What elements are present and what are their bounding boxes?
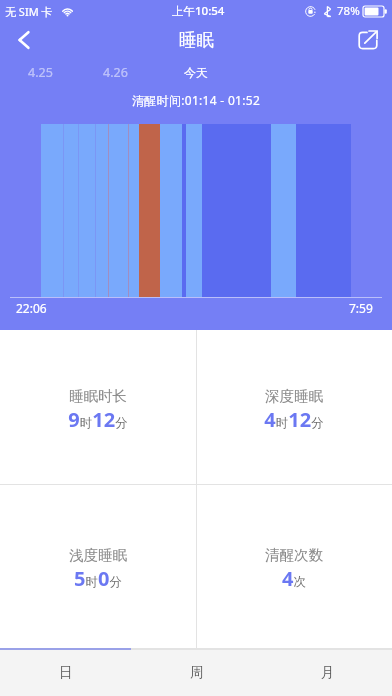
button[interactable]: 月 <box>261 650 392 696</box>
staticText: 深度睡眠 <box>265 387 323 405</box>
staticText: 清醒时间:01:14 - 01:52 <box>132 92 261 108</box>
button[interactable]: 清醒次数 <box>196 485 392 648</box>
staticText: 清醒次数 <box>265 546 323 564</box>
button[interactable]: 睡眠时长 <box>0 330 196 485</box>
staticText: 22:06 <box>16 300 47 316</box>
button[interactable]: 4.26 <box>85 61 145 83</box>
button[interactable]: Share <box>346 22 390 58</box>
staticText: 4时12分 <box>264 406 324 433</box>
staticText: 睡眠时长 <box>69 387 127 405</box>
staticText: 日 <box>59 664 73 681</box>
button[interactable]: 浅度睡眠 <box>0 485 196 648</box>
staticText: 4次 <box>282 565 306 592</box>
staticText: 月 <box>321 664 335 681</box>
button[interactable]: 深度睡眠 <box>196 330 392 485</box>
staticText: 今天 <box>184 65 208 80</box>
staticText: 睡眠 <box>179 29 214 51</box>
staticText: 78% <box>337 3 360 19</box>
staticText: 4.25 <box>28 64 53 81</box>
button[interactable]: 日 <box>0 650 130 696</box>
staticText: 7:59 <box>349 300 373 316</box>
button[interactable]: 4.25 <box>10 61 70 83</box>
staticText: 4.26 <box>103 64 128 81</box>
staticText: 周 <box>190 664 204 681</box>
button[interactable]: 周 <box>130 650 261 696</box>
staticText: 9时12分 <box>68 406 128 433</box>
button[interactable]: 今天 <box>166 61 226 83</box>
staticText: 浅度睡眠 <box>69 546 127 564</box>
button[interactable]: Back <box>2 22 46 58</box>
staticText: 上午10:54 <box>172 3 225 19</box>
staticText: 5时0分 <box>74 565 122 592</box>
staticText: 无 SIM 卡 <box>5 4 53 19</box>
